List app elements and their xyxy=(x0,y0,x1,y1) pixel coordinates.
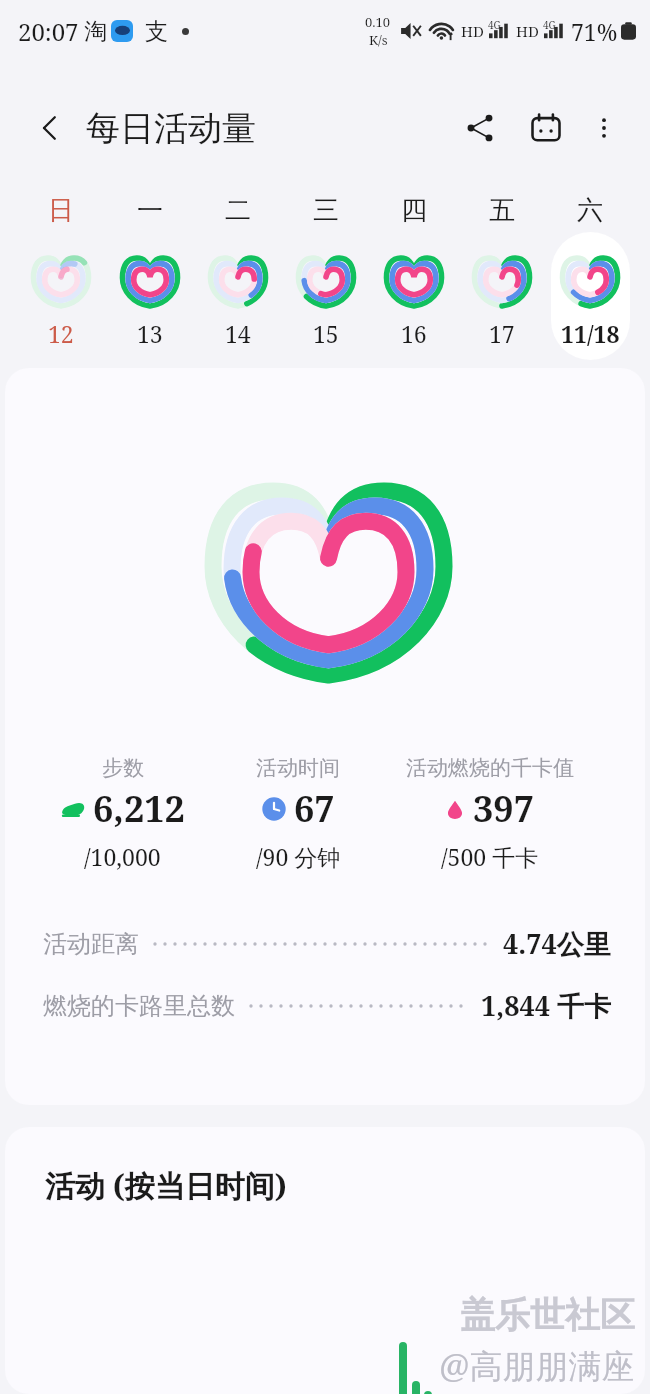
staticText: 1,844 千卡 xyxy=(481,987,611,1024)
staticText: 16 xyxy=(401,318,427,349)
button[interactable]: 四 xyxy=(370,194,458,366)
staticText: 397 xyxy=(473,784,535,833)
staticText: /500 千卡 xyxy=(441,841,539,872)
staticText: 4G xyxy=(543,18,556,32)
button[interactable]: 一 xyxy=(105,194,194,366)
button[interactable]: Calendar xyxy=(522,104,570,152)
staticText: HD xyxy=(516,21,539,41)
staticText: 燃烧的卡路里总数 xyxy=(43,991,235,1021)
button[interactable]: 日 xyxy=(16,194,105,366)
staticText: 六 xyxy=(577,194,603,227)
staticText: 13 xyxy=(137,318,163,349)
staticText: @高朋朋满座 xyxy=(439,1343,635,1388)
staticText: 20:07 xyxy=(18,15,79,48)
staticText: 日 xyxy=(48,194,74,227)
staticText: 14 xyxy=(225,318,251,349)
staticText: 活动燃烧的千卡值 xyxy=(406,755,574,781)
staticText: 活动 (按当日时间) xyxy=(45,1165,287,1206)
staticText: 淘 xyxy=(84,17,107,46)
staticText: 0.10 xyxy=(365,13,391,31)
staticText: /90 分钟 xyxy=(256,841,341,872)
staticText: 11/18 xyxy=(561,318,620,349)
staticText: 71% xyxy=(571,16,618,47)
staticText: 一 xyxy=(137,194,163,227)
staticText: 67 xyxy=(294,784,335,833)
staticText: 15 xyxy=(313,318,339,349)
staticText: K/s xyxy=(369,31,388,49)
staticText: 步数 xyxy=(102,755,144,781)
staticText: 盖乐世社区 xyxy=(460,1293,635,1337)
button[interactable]: 三 xyxy=(282,194,370,366)
button[interactable]: 二 xyxy=(194,194,282,366)
staticText: 活动距离 xyxy=(43,929,139,959)
staticText: 四 xyxy=(401,194,427,227)
button[interactable]: More options xyxy=(582,106,626,150)
staticText: 每日活动量 xyxy=(86,107,256,150)
staticText: 三 xyxy=(313,194,339,227)
staticText: 支 xyxy=(145,17,168,46)
staticText: 五 xyxy=(489,194,515,227)
button[interactable]: 六 xyxy=(546,194,634,366)
staticText: /10,000 xyxy=(84,841,161,872)
staticText: 6,212 xyxy=(93,784,185,833)
button[interactable]: 五 xyxy=(458,194,546,366)
staticText: 12 xyxy=(48,318,74,349)
staticText: 活动时间 xyxy=(256,755,340,781)
staticText: 二 xyxy=(225,194,251,227)
staticText: 4G xyxy=(488,18,501,32)
staticText: 4.74公里 xyxy=(503,925,611,962)
button[interactable]: Share xyxy=(456,104,504,152)
staticText: HD xyxy=(461,21,484,41)
staticText: 17 xyxy=(489,318,515,349)
button[interactable]: Back xyxy=(26,104,74,152)
